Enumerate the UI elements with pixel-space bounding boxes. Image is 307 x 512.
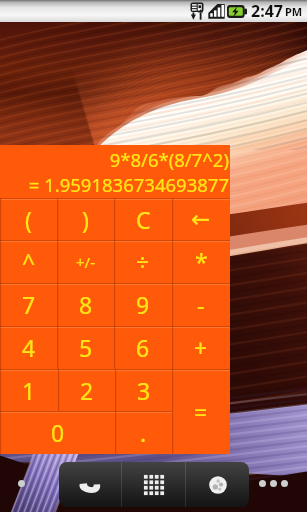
staticText: 5	[79, 332, 93, 363]
button[interactable]: 6	[114, 326, 172, 369]
button[interactable]: C	[114, 198, 172, 240]
button[interactable]: All apps	[122, 462, 185, 507]
button[interactable]: 3	[115, 369, 172, 411]
staticText: +/-	[76, 252, 95, 272]
button[interactable]: ^	[0, 240, 57, 283]
button[interactable]: +/-	[57, 240, 114, 283]
staticText: 9*8/6*(8/7^2)	[109, 147, 229, 172]
button[interactable]: )	[57, 198, 114, 240]
button[interactable]: -	[172, 283, 230, 326]
staticText: 4	[22, 332, 36, 363]
button[interactable]: 9	[114, 283, 172, 326]
staticText: ^	[22, 246, 36, 277]
button[interactable]: 4	[0, 326, 57, 369]
button[interactable]: =	[172, 369, 230, 454]
staticText: 3	[137, 375, 151, 406]
button[interactable]: Browser	[186, 462, 249, 507]
staticText: +	[194, 332, 208, 363]
button[interactable]: 0	[0, 411, 115, 454]
staticText: ÷	[136, 246, 150, 277]
staticText: PM	[285, 4, 303, 19]
button[interactable]: 2	[58, 369, 115, 411]
staticText: .	[140, 417, 147, 448]
staticText: -	[197, 289, 205, 320]
button[interactable]: 7	[0, 283, 57, 326]
button[interactable]: 8	[57, 283, 114, 326]
staticText: 0	[51, 417, 65, 448]
staticText: = 1.9591836734693877	[28, 172, 229, 197]
button[interactable]: .	[115, 411, 172, 454]
button[interactable]: ←	[172, 198, 230, 240]
staticText: (	[25, 204, 32, 235]
button[interactable]: ÷	[114, 240, 172, 283]
staticText: )	[82, 204, 89, 235]
button[interactable]: +	[172, 326, 230, 369]
staticText: ←	[191, 206, 211, 233]
staticText: 8	[79, 289, 93, 320]
staticText: 1	[22, 375, 36, 406]
staticText: 2	[80, 375, 94, 406]
button[interactable]: Phone	[59, 462, 121, 507]
staticText: 7	[22, 289, 36, 320]
staticText: 9	[136, 289, 150, 320]
staticText: =	[194, 396, 208, 427]
button[interactable]: (	[0, 198, 57, 240]
button[interactable]: *	[172, 240, 230, 283]
staticText: *	[195, 246, 208, 277]
button[interactable]: 5	[57, 326, 114, 369]
staticText: C	[136, 204, 151, 235]
button[interactable]: 1	[0, 369, 58, 411]
staticText: 2:47	[251, 0, 283, 22]
staticText: 6	[136, 332, 150, 363]
